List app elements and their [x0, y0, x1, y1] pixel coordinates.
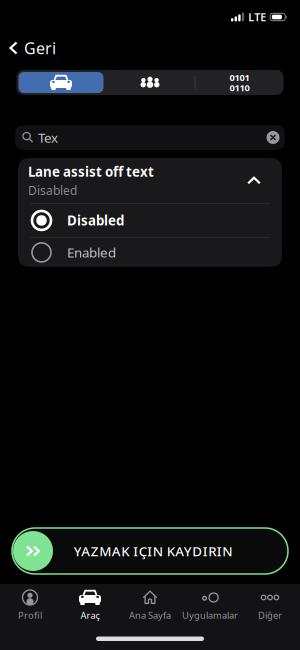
staticText: Araç: [80, 609, 99, 621]
staticText: Profil: [18, 609, 42, 621]
button[interactable]: Uygulamalar: [180, 589, 240, 621]
button[interactable]: Veri: [195, 70, 283, 95]
staticText: Ana Sayfa: [129, 609, 171, 621]
staticText: Geri: [24, 37, 56, 59]
staticText: 0101: [229, 71, 249, 83]
staticText: LTE: [248, 10, 266, 24]
button[interactable]: Lane assist off text: [18, 158, 282, 203]
button[interactable]: Disabled: [18, 204, 282, 237]
staticText: Lane assist off text: [28, 163, 154, 180]
button[interactable]: Diğer: [240, 589, 300, 621]
button[interactable]: Temizle: [266, 131, 279, 144]
staticText: YAZMAK IÇIN KAYDIRIN: [74, 542, 232, 560]
button[interactable]: Ana Sayfa: [120, 589, 180, 621]
button[interactable]: Geri: [0, 37, 56, 59]
button[interactable]: Yazmak için kaydırın: [12, 528, 288, 574]
staticText: Uygulamalar: [182, 609, 238, 621]
staticText: Disabled: [67, 212, 124, 229]
staticText: Diğer: [258, 609, 282, 621]
button[interactable]: Enabled: [18, 238, 282, 267]
button[interactable]: Kişiler: [105, 70, 194, 95]
staticText: Tex: [38, 129, 58, 146]
button[interactable]: Araç: [16, 70, 105, 95]
staticText: Disabled: [28, 182, 77, 198]
staticText: 0110: [229, 81, 249, 94]
button[interactable]: Araç: [60, 589, 120, 621]
staticText: Enabled: [67, 243, 116, 261]
button[interactable]: Profil: [0, 589, 60, 621]
